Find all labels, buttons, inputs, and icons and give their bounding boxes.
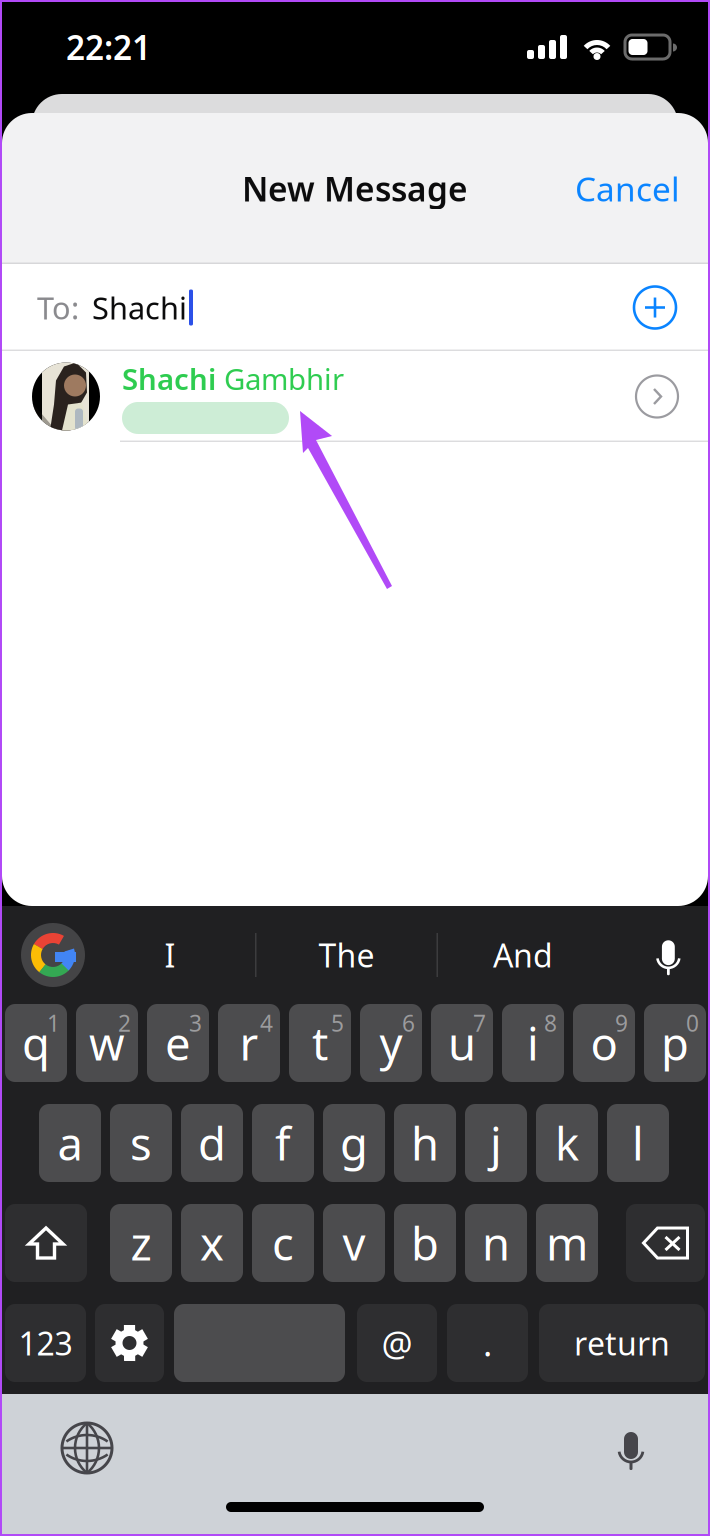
button[interactable]: g [323,1104,385,1182]
staticText: o [590,1013,617,1073]
button[interactable]: Shift [5,1204,87,1282]
staticText: n [482,1213,510,1273]
staticText: Shachi [122,359,216,398]
button[interactable]: Cancel [563,152,692,225]
staticText: @ [381,1320,412,1366]
staticText: 8 [544,1008,557,1038]
staticText: c [272,1213,294,1273]
button[interactable]: t [289,1004,351,1082]
staticText: q [22,1013,50,1073]
button[interactable]: k [536,1104,598,1182]
staticText: return [574,1322,670,1364]
staticText: x [200,1213,224,1273]
staticText: I [164,934,175,976]
button[interactable]: u [431,1004,493,1082]
button[interactable]: At sign [357,1304,437,1382]
staticText: New Message [242,166,468,211]
staticText: t [312,1013,328,1073]
button[interactable]: q [5,1004,67,1082]
button[interactable]: l [607,1104,669,1182]
staticText: z [130,1213,151,1273]
button[interactable]: h [394,1104,456,1182]
button[interactable]: b [394,1204,456,1282]
button[interactable]: Space [174,1304,345,1382]
staticText: Gambhir [216,359,344,398]
button[interactable]: s [110,1104,172,1182]
staticText: e [165,1013,191,1073]
button[interactable]: p [644,1004,706,1082]
button[interactable]: Dictation [614,1427,648,1469]
staticText: Cancel [575,166,680,211]
staticText: 9 [615,1008,628,1038]
staticText: 22:21 [66,25,151,69]
button[interactable]: And [438,925,608,985]
button[interactable]: Google Assistant [21,923,85,987]
staticText: y [379,1013,402,1073]
staticText: 3 [189,1008,202,1038]
staticText: u [448,1013,476,1073]
button[interactable]: Keyboard settings [95,1304,164,1382]
staticText: d [198,1113,226,1173]
staticText: 7 [473,1008,486,1038]
staticText: 0 [686,1008,699,1038]
staticText: m [546,1213,588,1273]
staticText: g [340,1113,368,1173]
button[interactable]: Shachi [2,351,708,442]
button[interactable]: v [323,1204,385,1282]
button[interactable]: r [218,1004,280,1082]
staticText: w [89,1013,125,1073]
staticText: 5 [331,1008,344,1038]
button[interactable]: The [256,925,436,985]
staticText: k [555,1113,579,1173]
staticText: 1 [47,1008,60,1038]
button[interactable]: a [39,1104,101,1182]
staticText: f [275,1113,291,1173]
button[interactable]: e [147,1004,209,1082]
button[interactable]: n [465,1204,527,1282]
button[interactable]: Voice typing [653,936,684,974]
button[interactable]: y [360,1004,422,1082]
staticText: a [57,1113,82,1173]
button[interactable]: w [76,1004,138,1082]
staticText: l [632,1113,644,1173]
staticText: Shachi [92,287,187,328]
button[interactable]: Backspace [626,1204,705,1282]
staticText: r [239,1013,258,1073]
button[interactable]: j [465,1104,527,1182]
staticText: 4 [260,1008,273,1038]
button[interactable]: Period [447,1304,528,1382]
button[interactable]: d [181,1104,243,1182]
staticText: 6 [402,1008,415,1038]
button[interactable]: c [252,1204,314,1282]
button[interactable]: I [85,925,255,985]
button[interactable]: x [181,1204,243,1282]
staticText: s [130,1113,152,1173]
button[interactable]: f [252,1104,314,1182]
staticText: v [342,1213,365,1273]
button[interactable]: Add contact [634,286,676,328]
button[interactable]: Next keyboard [62,1423,112,1473]
button[interactable]: i [502,1004,564,1082]
staticText: . [483,1320,492,1366]
button[interactable]: Return [539,1304,705,1382]
staticText: i [527,1013,539,1073]
staticText: 2 [118,1008,131,1038]
staticText: p [661,1013,689,1073]
staticText: h [411,1113,439,1173]
button[interactable]: z [110,1204,172,1282]
staticText: The [318,934,374,976]
button[interactable]: Numbers and symbols [5,1304,86,1382]
button[interactable]: m [536,1204,598,1282]
staticText: To: [37,287,79,328]
staticText: 123 [18,1322,72,1364]
button[interactable]: o [573,1004,635,1082]
staticText: j [490,1113,502,1173]
staticText: And [493,934,553,976]
staticText: b [411,1213,439,1273]
